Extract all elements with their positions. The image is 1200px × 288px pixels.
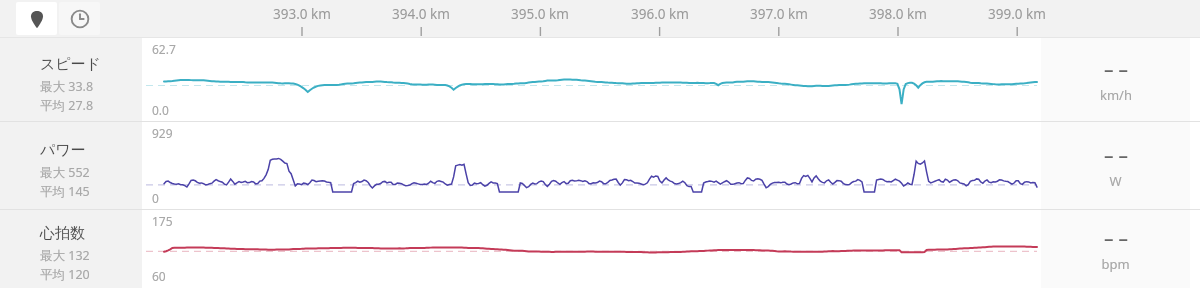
staticText: 心拍数: [40, 224, 85, 243]
button[interactable]: 心拍数: [0, 210, 135, 288]
staticText: – –: [1104, 56, 1128, 82]
button[interactable]: パワー: [0, 122, 135, 210]
staticText: W: [1109, 172, 1122, 190]
staticText: – –: [1104, 142, 1128, 168]
staticText: 395.0 km: [511, 5, 569, 23]
staticText: 最大 33.8: [40, 78, 94, 95]
button[interactable]: Time view: [59, 2, 100, 35]
staticText: スピード: [40, 55, 102, 74]
staticText: 399.0 km: [988, 5, 1046, 23]
staticText: パワー: [40, 141, 86, 160]
staticText: – –: [1104, 225, 1128, 251]
staticText: 397.0 km: [750, 5, 808, 23]
staticText: 929: [152, 125, 173, 141]
staticText: bpm: [1101, 255, 1130, 273]
staticText: 0.0: [152, 102, 169, 118]
staticText: 最大 552: [40, 164, 90, 181]
button[interactable]: スピード: [0, 38, 135, 122]
staticText: 平均 145: [40, 183, 90, 200]
staticText: 62.7: [152, 41, 176, 57]
staticText: 394.0 km: [392, 5, 450, 23]
button[interactable]: – –: [1041, 210, 1190, 288]
staticText: km/h: [1100, 86, 1132, 104]
staticText: 398.0 km: [869, 5, 927, 23]
staticText: 0: [152, 190, 159, 206]
staticText: 平均 120: [40, 266, 90, 283]
staticText: 393.0 km: [273, 5, 331, 23]
button[interactable]: – –: [1041, 38, 1190, 122]
staticText: 平均 27.8: [40, 97, 94, 114]
button[interactable]: Map view: [16, 2, 57, 35]
staticText: 396.0 km: [631, 5, 689, 23]
staticText: 最大 132: [40, 247, 90, 264]
staticText: 175: [152, 213, 173, 229]
button[interactable]: – –: [1041, 122, 1190, 210]
staticText: 60: [152, 268, 166, 284]
